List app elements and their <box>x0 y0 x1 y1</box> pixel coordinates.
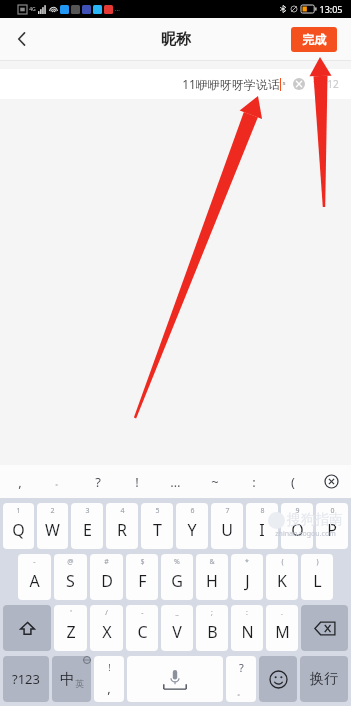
staticText: 8 <box>260 506 265 516</box>
button[interactable]: * <box>231 554 263 600</box>
button[interactable]: - <box>18 554 51 600</box>
staticText: T <box>153 519 162 541</box>
staticText: 1 <box>16 506 21 516</box>
button[interactable]: ( <box>266 554 298 600</box>
button[interactable]: # <box>90 554 123 600</box>
staticText: P <box>327 519 337 541</box>
staticText: ? <box>95 473 101 491</box>
staticText: W <box>45 519 60 541</box>
staticText: 昵称 <box>161 30 191 49</box>
staticText: 9 <box>295 506 300 516</box>
staticText: ' <box>70 608 72 618</box>
staticText: 13:05 <box>319 3 343 15</box>
button[interactable]: 8 <box>246 503 278 549</box>
button[interactable]: ' <box>54 605 87 651</box>
button[interactable]: 9 <box>281 503 313 549</box>
staticText: 。 <box>55 477 63 487</box>
button[interactable]: ( <box>273 465 312 498</box>
button[interactable]: ? <box>226 656 256 702</box>
button[interactable]: 1 <box>3 503 34 549</box>
staticText: S <box>66 570 75 592</box>
staticText: , <box>18 473 22 491</box>
staticText: 英 <box>75 678 84 689</box>
button[interactable]: 6 <box>176 503 208 549</box>
button[interactable]: Delete <box>312 465 351 498</box>
button[interactable]: _ <box>161 605 193 651</box>
button[interactable]: Space <box>127 656 223 702</box>
button[interactable]: - <box>126 605 158 651</box>
button[interactable]: / <box>90 605 123 651</box>
staticText: 7 <box>225 506 230 516</box>
staticText: 5 <box>155 506 160 516</box>
button[interactable]: . <box>266 605 298 651</box>
staticText: 11咿咿呀呀学说话 <box>182 76 280 92</box>
button[interactable]: @ <box>54 554 87 600</box>
staticText: . <box>281 608 283 618</box>
staticText: ? <box>239 660 244 675</box>
button[interactable]: … <box>156 465 195 498</box>
staticText: 完成 <box>302 32 326 47</box>
button[interactable]: , <box>0 465 39 498</box>
staticText: - <box>141 608 144 618</box>
staticText: N <box>241 621 254 643</box>
staticText: B <box>207 621 218 643</box>
button[interactable]: Backspace <box>301 605 348 651</box>
staticText: ( <box>281 557 284 567</box>
button[interactable]: % <box>161 554 193 600</box>
staticText: ) <box>316 557 319 567</box>
staticText: 搜狗指南 <box>287 511 343 529</box>
button[interactable]: 换行 <box>300 656 348 702</box>
staticText: G <box>171 570 183 592</box>
staticText: U <box>221 519 233 541</box>
button[interactable]: 4 <box>106 503 138 549</box>
staticText: Y <box>187 519 197 541</box>
staticText: - <box>33 557 36 567</box>
staticText: Q <box>12 519 25 541</box>
button[interactable]: 7 <box>211 503 243 549</box>
button[interactable]: & <box>196 554 228 600</box>
button[interactable]: ! <box>94 656 124 702</box>
button[interactable]: 2 <box>37 503 68 549</box>
button[interactable]: $ <box>126 554 158 600</box>
staticText: 4 <box>120 506 125 516</box>
button[interactable]: ) <box>301 554 333 600</box>
staticText: ! <box>108 661 111 673</box>
button[interactable]: 中 <box>52 656 91 702</box>
button[interactable]: 0 <box>316 503 348 549</box>
staticText: $ <box>140 557 145 567</box>
staticText: E <box>83 519 92 541</box>
button[interactable]: ? <box>78 465 117 498</box>
staticText: V <box>172 621 182 643</box>
button[interactable]: Clear <box>293 78 305 90</box>
button[interactable]: 11咿咿呀呀学说话 <box>12 69 339 99</box>
staticText: H <box>206 570 218 592</box>
button[interactable]: ! <box>117 465 156 498</box>
button[interactable]: ~ <box>195 465 234 498</box>
button[interactable]: Back <box>0 18 44 60</box>
staticText: I <box>259 519 265 541</box>
staticText: ··· <box>115 6 120 14</box>
staticText: _ <box>175 608 179 618</box>
button[interactable]: : <box>234 465 273 498</box>
staticText: : <box>246 608 248 618</box>
button[interactable]: ; <box>196 605 228 651</box>
staticText: zhinan.sogou.com <box>275 529 336 539</box>
staticText: A <box>29 570 40 592</box>
button[interactable]: ?123 <box>3 656 49 702</box>
staticText: ?123 <box>12 670 40 688</box>
button[interactable]: Shift <box>3 605 51 651</box>
button[interactable]: 3 <box>71 503 103 549</box>
staticText: L <box>313 570 322 592</box>
button[interactable]: : <box>231 605 263 651</box>
staticText: 3 <box>85 506 90 516</box>
button[interactable]: Emoji <box>259 656 297 702</box>
staticText: 2 <box>50 506 55 516</box>
staticText: Z <box>66 621 76 643</box>
staticText: 。 <box>237 687 245 697</box>
staticText: ( <box>291 473 295 491</box>
button[interactable]: 5 <box>141 503 173 549</box>
staticText: 6 <box>190 506 195 516</box>
button[interactable]: 完成 <box>291 27 337 52</box>
staticText: # <box>104 557 109 567</box>
